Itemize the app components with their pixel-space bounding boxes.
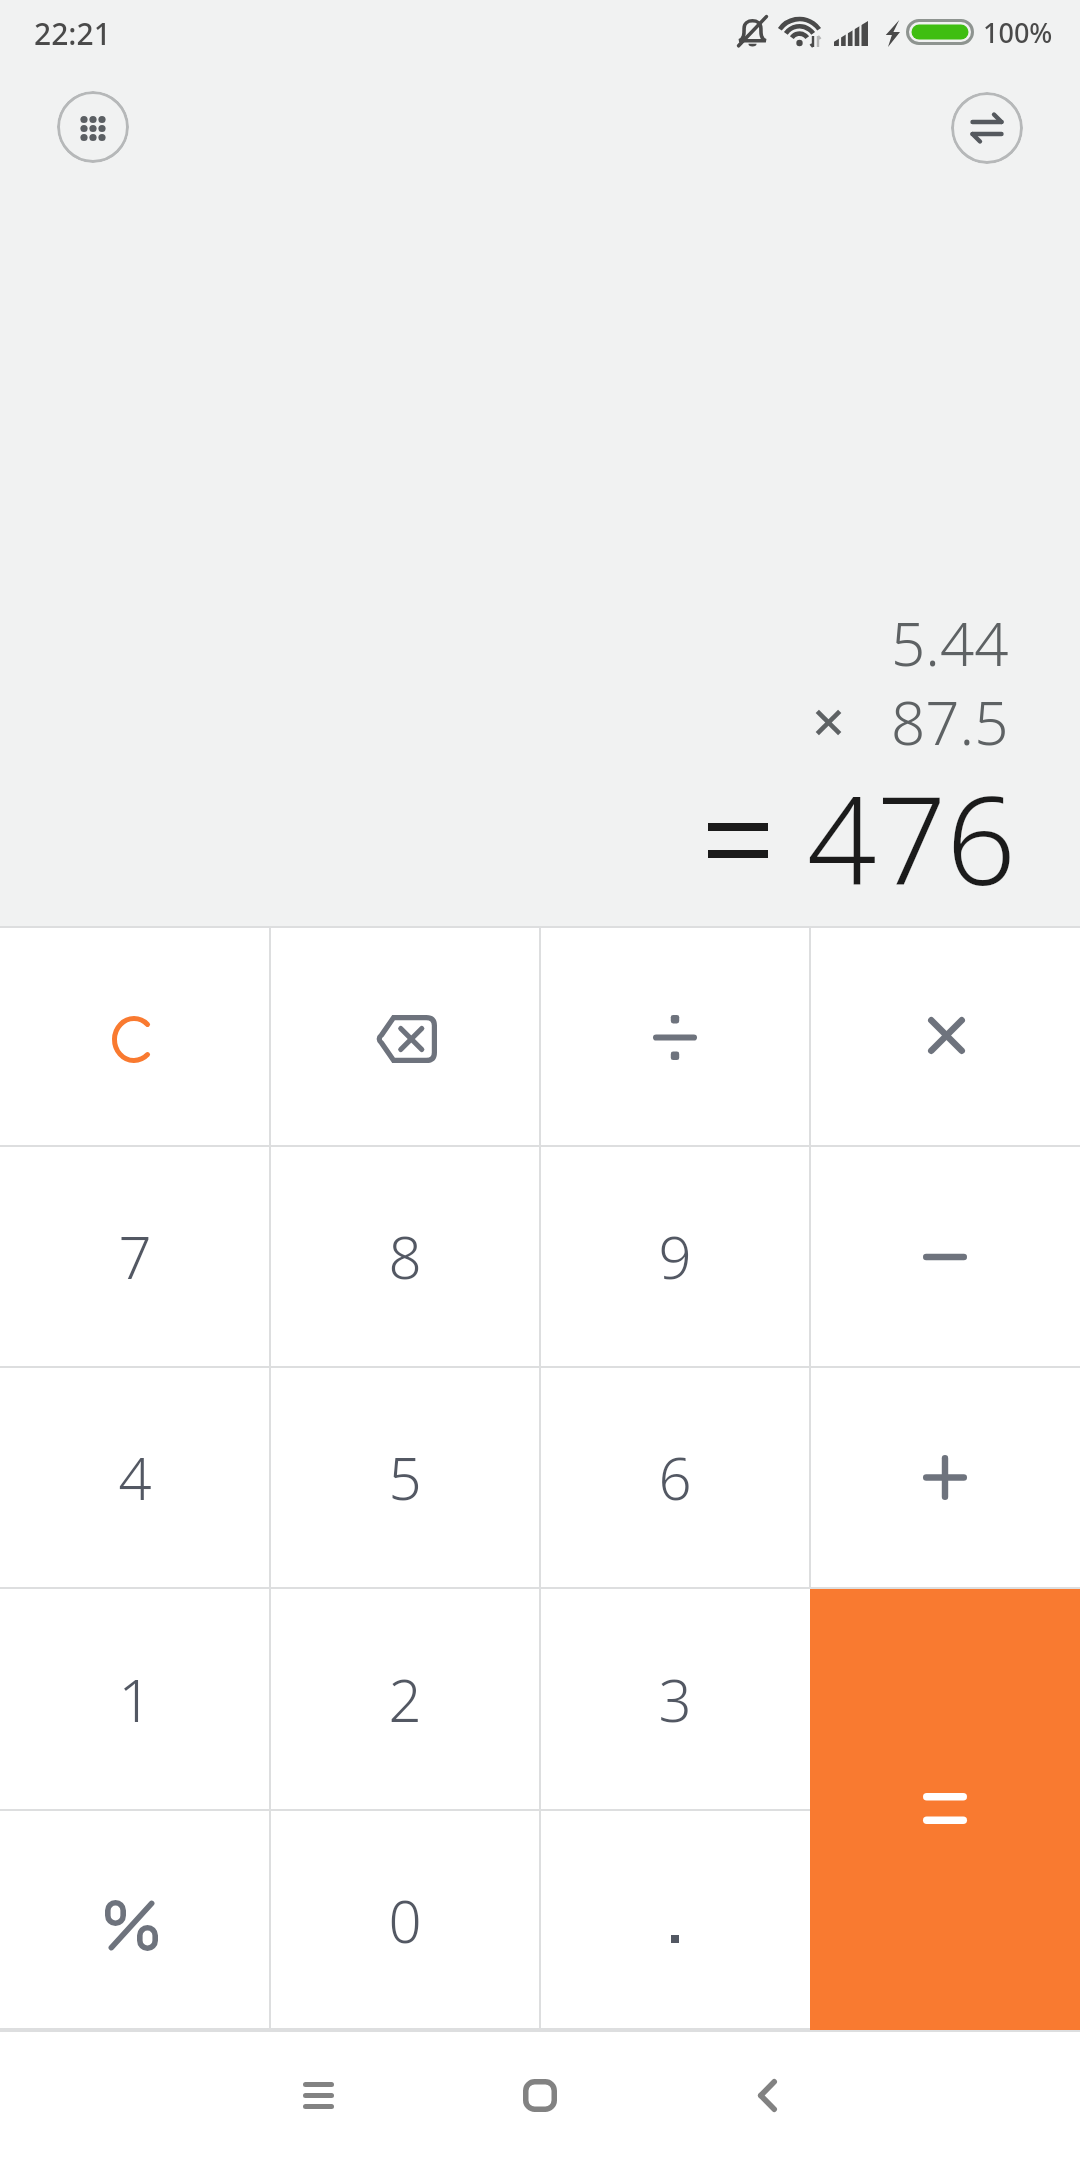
button[interactable]: History: [57, 91, 129, 163]
button[interactable]: 2: [270, 1588, 540, 1810]
staticText: 3: [658, 1660, 692, 1739]
other: Clear: [112, 1016, 156, 1063]
button[interactable]: Equals: [810, 1589, 1080, 2030]
staticText: 9: [658, 1217, 692, 1296]
button[interactable]: Minus: [810, 1146, 1080, 1367]
other: Multiply: [928, 1017, 965, 1054]
button[interactable]: 1: [0, 1588, 270, 1810]
staticText: 4: [118, 1438, 152, 1517]
staticText: 0: [388, 1881, 422, 1960]
staticText: 7: [118, 1217, 152, 1296]
button[interactable]: Decimal point: [540, 1810, 810, 2030]
button[interactable]: 0: [270, 1810, 540, 2030]
button[interactable]: 9: [540, 1146, 810, 1367]
button[interactable]: 8: [270, 1146, 540, 1367]
button[interactable]: 4: [0, 1367, 270, 1588]
button[interactable]: Home: [475, 2030, 605, 2160]
button[interactable]: Multiply: [810, 926, 1080, 1146]
staticText: 6: [658, 1438, 692, 1517]
button[interactable]: 7: [0, 1146, 270, 1367]
button[interactable]: Recents: [253, 2030, 383, 2160]
other: Plus: [923, 1455, 967, 1500]
staticText: 8: [388, 1217, 422, 1296]
button[interactable]: Unit converter: [951, 92, 1023, 164]
other: Backspace: [375, 1015, 437, 1063]
staticText: 100%: [983, 14, 1053, 51]
other: Decimal point: [671, 1898, 679, 1943]
button[interactable]: 5: [270, 1367, 540, 1588]
other: Percent: [105, 1900, 158, 1951]
button[interactable]: Clear: [0, 926, 270, 1146]
button[interactable]: 3: [540, 1588, 810, 1810]
staticText: 87.5: [891, 681, 1009, 763]
button[interactable]: Back: [702, 2030, 832, 2160]
button[interactable]: Backspace: [270, 926, 540, 1146]
button[interactable]: Plus: [810, 1367, 1080, 1588]
staticText: 5: [388, 1438, 422, 1517]
staticText: 1: [118, 1660, 152, 1739]
button[interactable]: 6: [540, 1367, 810, 1588]
staticText: 5.44: [891, 602, 1009, 684]
staticText: 2: [388, 1660, 422, 1739]
staticText: 22:21: [34, 13, 111, 54]
other: Divide: [653, 1015, 697, 1060]
button[interactable]: Percent: [0, 1810, 270, 2030]
button[interactable]: Divide: [540, 926, 810, 1146]
staticText: 476: [807, 755, 1016, 921]
other: Minus: [923, 1253, 967, 1261]
